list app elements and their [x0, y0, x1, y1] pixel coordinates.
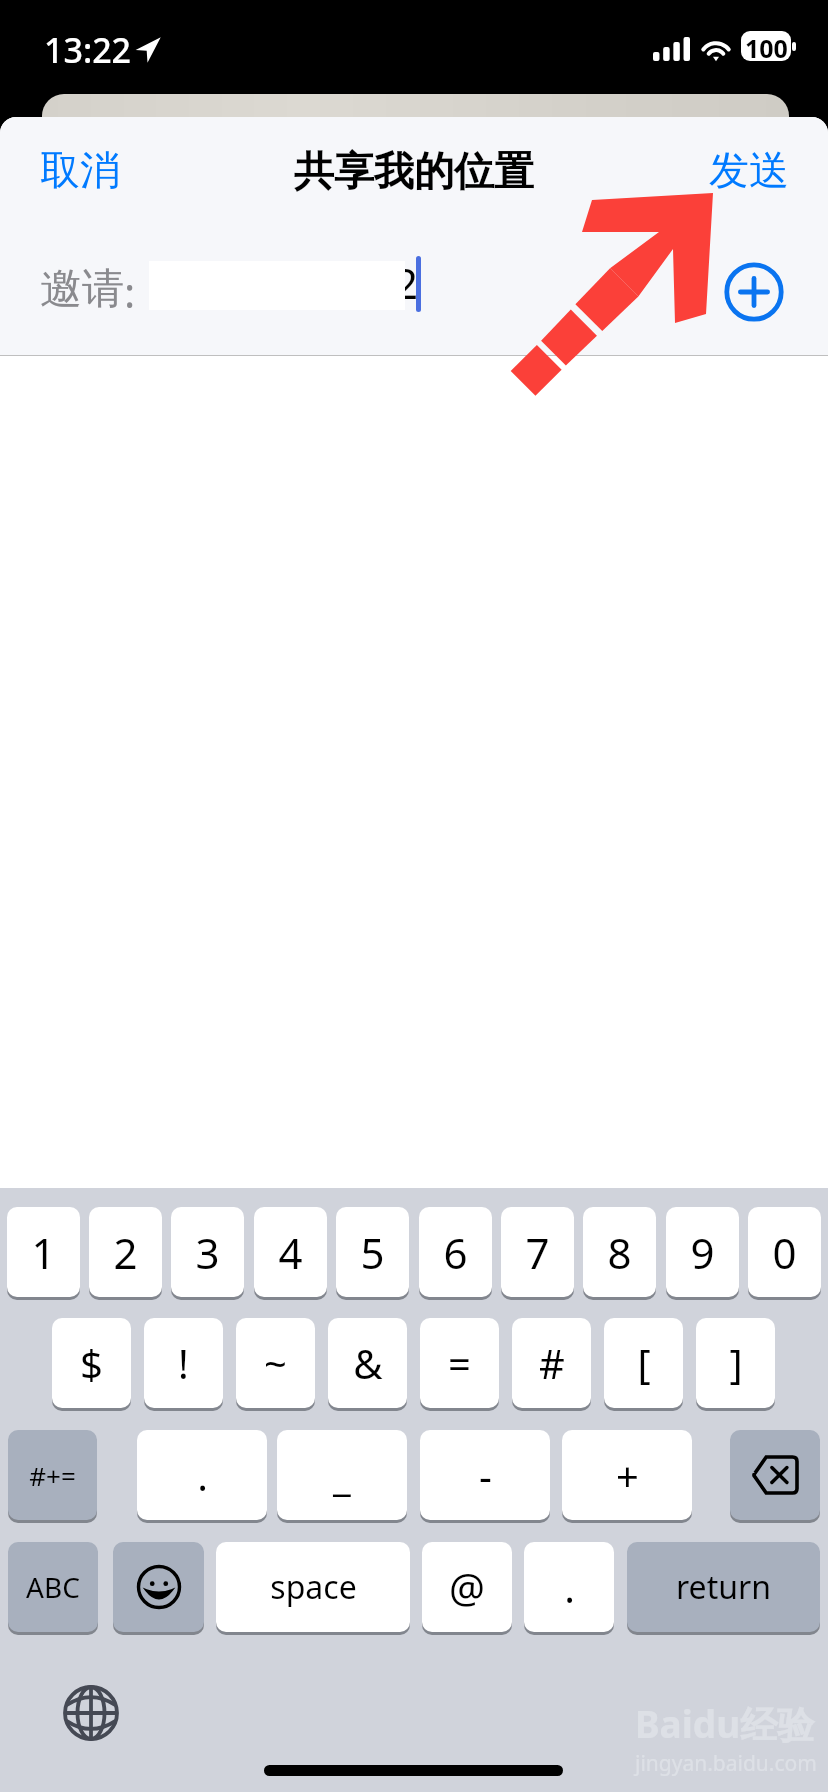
button[interactable]: 3	[171, 1207, 244, 1297]
staticText: 发送	[709, 145, 789, 195]
staticText: =	[448, 1336, 471, 1390]
staticText: 13:22	[44, 27, 132, 73]
button[interactable]: 4	[254, 1207, 327, 1297]
staticText: 共享我的位置	[294, 146, 534, 196]
button[interactable]: 5	[336, 1207, 409, 1297]
staticText: jingyan.baidu.com	[635, 1749, 817, 1778]
button[interactable]: 1	[7, 1207, 80, 1297]
staticText: 2	[394, 254, 419, 311]
staticText: _	[333, 1448, 351, 1502]
staticText: 8	[607, 1224, 632, 1281]
button[interactable]: 8	[583, 1207, 656, 1297]
staticText: 0	[772, 1224, 797, 1281]
staticText: [	[637, 1336, 651, 1390]
button[interactable]: _	[277, 1430, 407, 1520]
staticText: ]	[729, 1336, 743, 1390]
staticText: !	[178, 1336, 189, 1390]
button[interactable]: 取消	[22, 133, 138, 207]
staticText: -	[479, 1448, 492, 1502]
staticText: Baidu经验	[635, 1698, 815, 1749]
button[interactable]: ]	[696, 1318, 775, 1408]
button[interactable]: 0	[748, 1207, 821, 1297]
staticText: :	[124, 263, 136, 320]
button[interactable]: -	[420, 1430, 550, 1520]
staticText: ABC	[26, 1568, 80, 1606]
button[interactable]: @	[422, 1542, 512, 1632]
button[interactable]: Add contact	[720, 258, 788, 326]
button[interactable]: Delete	[730, 1430, 820, 1520]
staticText: 取消	[40, 145, 120, 195]
button[interactable]: ABC	[8, 1542, 98, 1632]
button[interactable]: #	[512, 1318, 591, 1408]
button[interactable]: .	[137, 1430, 267, 1520]
button[interactable]: Emoji	[113, 1542, 204, 1632]
staticText: #+=	[29, 1458, 76, 1493]
staticText: 3	[195, 1224, 220, 1281]
staticText: #	[539, 1336, 565, 1390]
button[interactable]: 发送	[691, 133, 807, 207]
button[interactable]: Change keyboard	[62, 1684, 120, 1742]
button[interactable]: !	[144, 1318, 223, 1408]
staticText: 4	[278, 1224, 303, 1281]
button[interactable]: +	[562, 1430, 692, 1520]
staticText: @	[449, 1560, 485, 1614]
staticText: .	[564, 1560, 575, 1614]
button[interactable]: space	[216, 1542, 410, 1632]
staticText: 5	[360, 1224, 385, 1281]
staticText: +	[616, 1448, 639, 1502]
button[interactable]: =	[420, 1318, 499, 1408]
staticText: 2	[113, 1224, 138, 1281]
staticText: ~	[264, 1336, 287, 1390]
staticText: 1	[31, 1224, 56, 1281]
button[interactable]: 2	[89, 1207, 162, 1297]
staticText: 9	[690, 1224, 715, 1281]
staticText: space	[270, 1565, 357, 1609]
staticText: 6	[443, 1224, 468, 1281]
staticText: .	[197, 1448, 208, 1502]
staticText: 100	[745, 31, 788, 61]
button[interactable]: ~	[236, 1318, 315, 1408]
staticText: return	[676, 1565, 771, 1609]
button[interactable]: [	[604, 1318, 683, 1408]
staticText: 邀请	[40, 263, 124, 316]
button[interactable]: 9	[666, 1207, 739, 1297]
staticText: 7	[525, 1224, 550, 1281]
button[interactable]: .	[524, 1542, 614, 1632]
button[interactable]: return	[627, 1542, 820, 1632]
button[interactable]: 7	[501, 1207, 574, 1297]
button[interactable]: #+=	[8, 1430, 97, 1520]
button[interactable]: $	[52, 1318, 131, 1408]
button[interactable]: &	[328, 1318, 407, 1408]
button[interactable]: 6	[419, 1207, 492, 1297]
staticText: $	[80, 1336, 103, 1390]
staticText: &	[353, 1336, 383, 1390]
